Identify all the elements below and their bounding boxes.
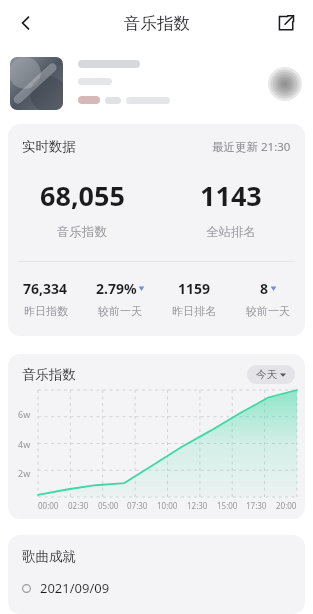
staticText: 音乐指数	[124, 13, 190, 34]
staticText: 17:30	[246, 500, 267, 511]
staticText: 68,055	[40, 177, 125, 214]
staticText: 歌曲成就	[22, 548, 76, 565]
staticText: 较前一天	[98, 304, 142, 318]
staticText: 15:00	[217, 500, 238, 511]
staticText: 较前一天	[246, 304, 290, 318]
button[interactable]: Share	[267, 4, 305, 42]
staticText: 00:00	[38, 500, 59, 511]
staticText: 音乐指数	[57, 224, 107, 240]
button[interactable]	[0, 46, 313, 124]
staticText: 1159	[178, 279, 211, 298]
staticText: 最近更新 21:30	[212, 139, 291, 155]
staticText: 昨日指数	[24, 304, 68, 318]
staticText: 07:30	[127, 500, 148, 511]
staticText: 全站排名	[206, 224, 256, 240]
staticText: 6w	[18, 408, 31, 420]
staticText: 02:30	[68, 500, 89, 511]
staticText: 10:00	[157, 500, 178, 511]
staticText: 今天	[256, 368, 277, 381]
button[interactable]: Back	[6, 3, 46, 43]
staticText: 8	[260, 279, 269, 298]
button[interactable]: 今天	[247, 365, 295, 384]
staticText: 1143	[200, 177, 262, 214]
staticText: 2.79%	[96, 279, 137, 298]
staticText: 昨日排名	[172, 304, 216, 318]
staticText: 20:00	[276, 500, 297, 511]
staticText: 05:00	[98, 500, 119, 511]
staticText: 音乐指数	[22, 366, 76, 383]
staticText: 2w	[18, 467, 31, 479]
staticText: 2021/09/09	[40, 579, 110, 597]
staticText: 12:30	[187, 500, 208, 511]
staticText: 76,334	[23, 279, 68, 298]
staticText: 4w	[18, 438, 31, 450]
staticText: 实时数据	[22, 138, 76, 155]
